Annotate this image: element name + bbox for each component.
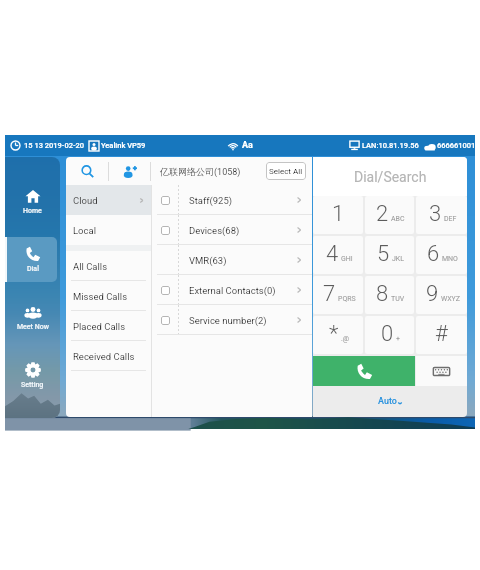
staticText: VMR(63) xyxy=(189,255,227,266)
button[interactable]: Auto xyxy=(313,386,467,417)
staticText: Auto xyxy=(378,396,397,407)
staticText: Dial/Search xyxy=(354,169,427,185)
staticText: 5 xyxy=(377,241,390,267)
button[interactable]: Local xyxy=(66,215,151,245)
button[interactable]: Devices(68) xyxy=(152,215,312,245)
button[interactable]: Meet Now xyxy=(5,288,60,346)
staticText: 15 13 2019-02-20 xyxy=(24,141,84,150)
staticText: JKL xyxy=(392,255,405,263)
button[interactable]: Placed Calls xyxy=(66,311,151,341)
button[interactable]: Add contact xyxy=(109,157,150,185)
button[interactable]: Received Calls xyxy=(66,341,151,371)
button[interactable]: 3 xyxy=(416,196,467,234)
staticText: 4 xyxy=(326,241,339,267)
button[interactable]: 2 xyxy=(365,196,414,234)
button[interactable]: Dial/Search xyxy=(313,157,467,196)
button[interactable]: External Contacts(0) xyxy=(152,275,312,305)
button[interactable]: 6 xyxy=(416,236,467,274)
staticText: LAN:10.81.19.56 xyxy=(362,141,419,150)
button[interactable]: Dial xyxy=(5,230,60,288)
button[interactable]: Search xyxy=(66,157,108,185)
staticText: 666661001 xyxy=(437,141,476,150)
button[interactable]: Cloud xyxy=(66,185,151,215)
staticText: 8 xyxy=(376,281,389,307)
button[interactable]: 9 xyxy=(416,276,467,314)
button[interactable]: 8 xyxy=(365,276,414,314)
button[interactable]: Service number(2) xyxy=(152,305,312,335)
staticText: Received Calls xyxy=(73,351,135,362)
staticText: 1 xyxy=(332,201,345,227)
staticText: * xyxy=(329,321,339,347)
staticText: 9 xyxy=(426,281,439,307)
staticText: .@ xyxy=(341,335,350,343)
staticText: WXYZ xyxy=(441,295,460,303)
staticText: 2 xyxy=(376,201,389,227)
button[interactable]: 5 xyxy=(365,236,414,274)
staticText: PQRS xyxy=(338,295,356,303)
staticText: GHI xyxy=(341,255,353,263)
button[interactable]: Setting xyxy=(5,346,60,404)
staticText: Devices(68) xyxy=(189,225,240,236)
staticText: DEF xyxy=(444,215,457,223)
button[interactable]: 7 xyxy=(313,276,363,314)
button[interactable]: Missed Calls xyxy=(66,281,151,311)
staticText: TUV xyxy=(391,295,405,303)
button[interactable]: Select All xyxy=(266,162,306,180)
staticText: ABC xyxy=(391,215,405,223)
staticText: MNO xyxy=(442,255,458,263)
staticText: Placed Calls xyxy=(73,321,126,332)
button[interactable]: All Calls xyxy=(66,251,151,281)
staticText: Meet Now xyxy=(17,323,49,331)
staticText: Setting xyxy=(21,381,44,389)
staticText: 亿联网络公司(1058) xyxy=(160,166,241,177)
button[interactable]: Call xyxy=(313,356,415,386)
button[interactable]: VMR(63) xyxy=(152,245,312,275)
button[interactable]: # xyxy=(416,316,467,354)
staticText: Local xyxy=(73,225,96,236)
staticText: Yealink VP59 xyxy=(101,141,146,150)
button[interactable]: 4 xyxy=(313,236,363,274)
button[interactable]: 1 xyxy=(313,196,363,234)
staticText: All Calls xyxy=(73,261,108,272)
staticText: Service number(2) xyxy=(189,315,267,326)
staticText: Dial xyxy=(27,265,39,273)
staticText: Aa xyxy=(242,140,253,151)
staticText: External Contacts(0) xyxy=(189,285,276,296)
staticText: + xyxy=(396,335,400,343)
staticText: Cloud xyxy=(73,195,98,206)
staticText: Staff(925) xyxy=(189,195,233,206)
staticText: 6 xyxy=(427,241,440,267)
button[interactable]: 0 xyxy=(365,316,414,354)
button[interactable]: Staff(925) xyxy=(152,185,312,215)
staticText: # xyxy=(435,321,448,347)
staticText: 3 xyxy=(429,201,442,227)
button[interactable]: Keyboard xyxy=(416,356,467,386)
button[interactable]: Home xyxy=(5,172,60,230)
button[interactable]: * xyxy=(313,316,363,354)
staticText: Select All xyxy=(269,167,303,176)
staticText: Missed Calls xyxy=(73,291,128,302)
staticText: Home xyxy=(23,207,42,215)
staticText: 7 xyxy=(323,281,336,307)
staticText: 0 xyxy=(381,321,394,347)
